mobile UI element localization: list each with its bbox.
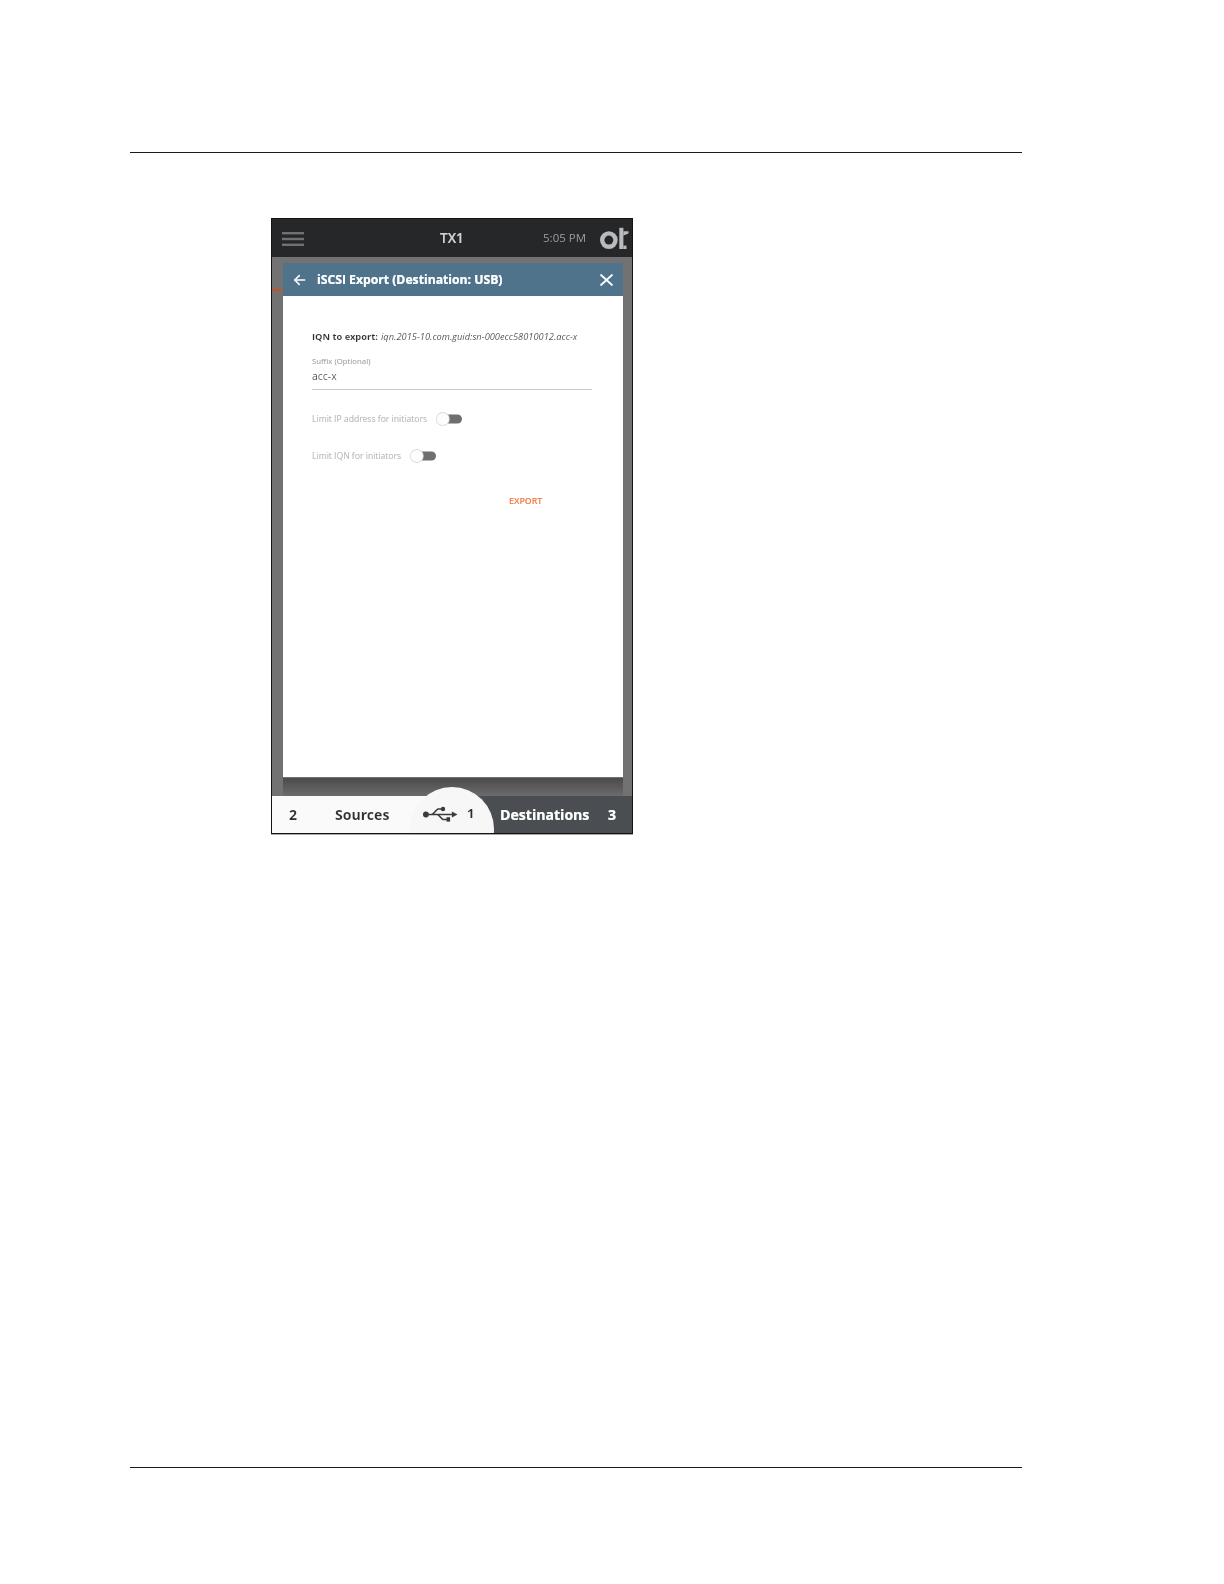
staticText: Limit IQN for initiators [312,450,402,462]
staticText: iqn.2015-10.com.guid:sn-000ecc58010012.a… [381,330,578,343]
staticText: Suffix (Optional) [312,356,371,367]
staticText: iSCSI Export (Destination: USB) [317,271,503,288]
staticText: acc-x [312,369,337,383]
staticText: Destinations [500,805,590,824]
button[interactable] [436,411,462,427]
staticText: Limit IP address for initiators [312,413,428,425]
staticText: 2 [289,805,298,824]
button[interactable]: EXPORT [503,491,549,511]
staticText: TX1 [440,229,464,247]
staticText: EXPORT [509,495,543,507]
staticText: 3 [608,805,617,824]
button[interactable]: Back [289,270,309,290]
button[interactable]: USB destination [410,787,494,833]
button[interactable]: Destinations [468,796,632,833]
button[interactable]: Menu [277,227,309,251]
button[interactable] [410,448,436,464]
staticText: Sources [335,805,390,824]
staticText: 5:05 PM [543,230,587,246]
staticText: 1 [467,804,475,822]
staticText: IQN to export: [312,330,381,343]
button[interactable]: Close [596,270,616,290]
button[interactable]: 2 [272,796,468,833]
